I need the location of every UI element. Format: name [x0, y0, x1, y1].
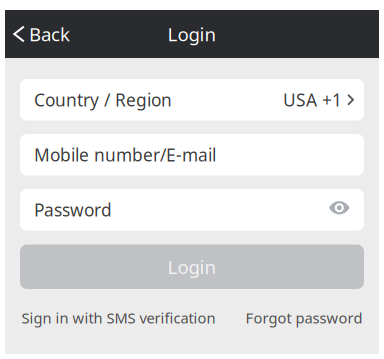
button[interactable]: Forgot password	[245, 305, 362, 330]
staticText: USA +1	[283, 88, 342, 111]
staticText: Forgot password	[245, 308, 362, 327]
button[interactable]: Back	[5, 12, 80, 56]
staticText: Mobile number/E-mail	[34, 143, 216, 166]
staticText: Back	[29, 22, 70, 46]
staticText: Country / Region	[34, 88, 172, 111]
button[interactable]: Show password	[329, 201, 350, 219]
button[interactable]: Mobile number/E-mail	[20, 134, 364, 175]
staticText: Login	[167, 22, 216, 46]
button[interactable]: Sign in with SMS verification	[21, 305, 215, 330]
staticText: Sign in with SMS verification	[21, 308, 215, 327]
button[interactable]: Country / Region	[20, 79, 364, 120]
staticText: Password	[34, 198, 112, 221]
staticText: Login	[167, 254, 216, 279]
button[interactable]: Password	[20, 189, 364, 230]
button[interactable]: Login	[20, 244, 364, 289]
